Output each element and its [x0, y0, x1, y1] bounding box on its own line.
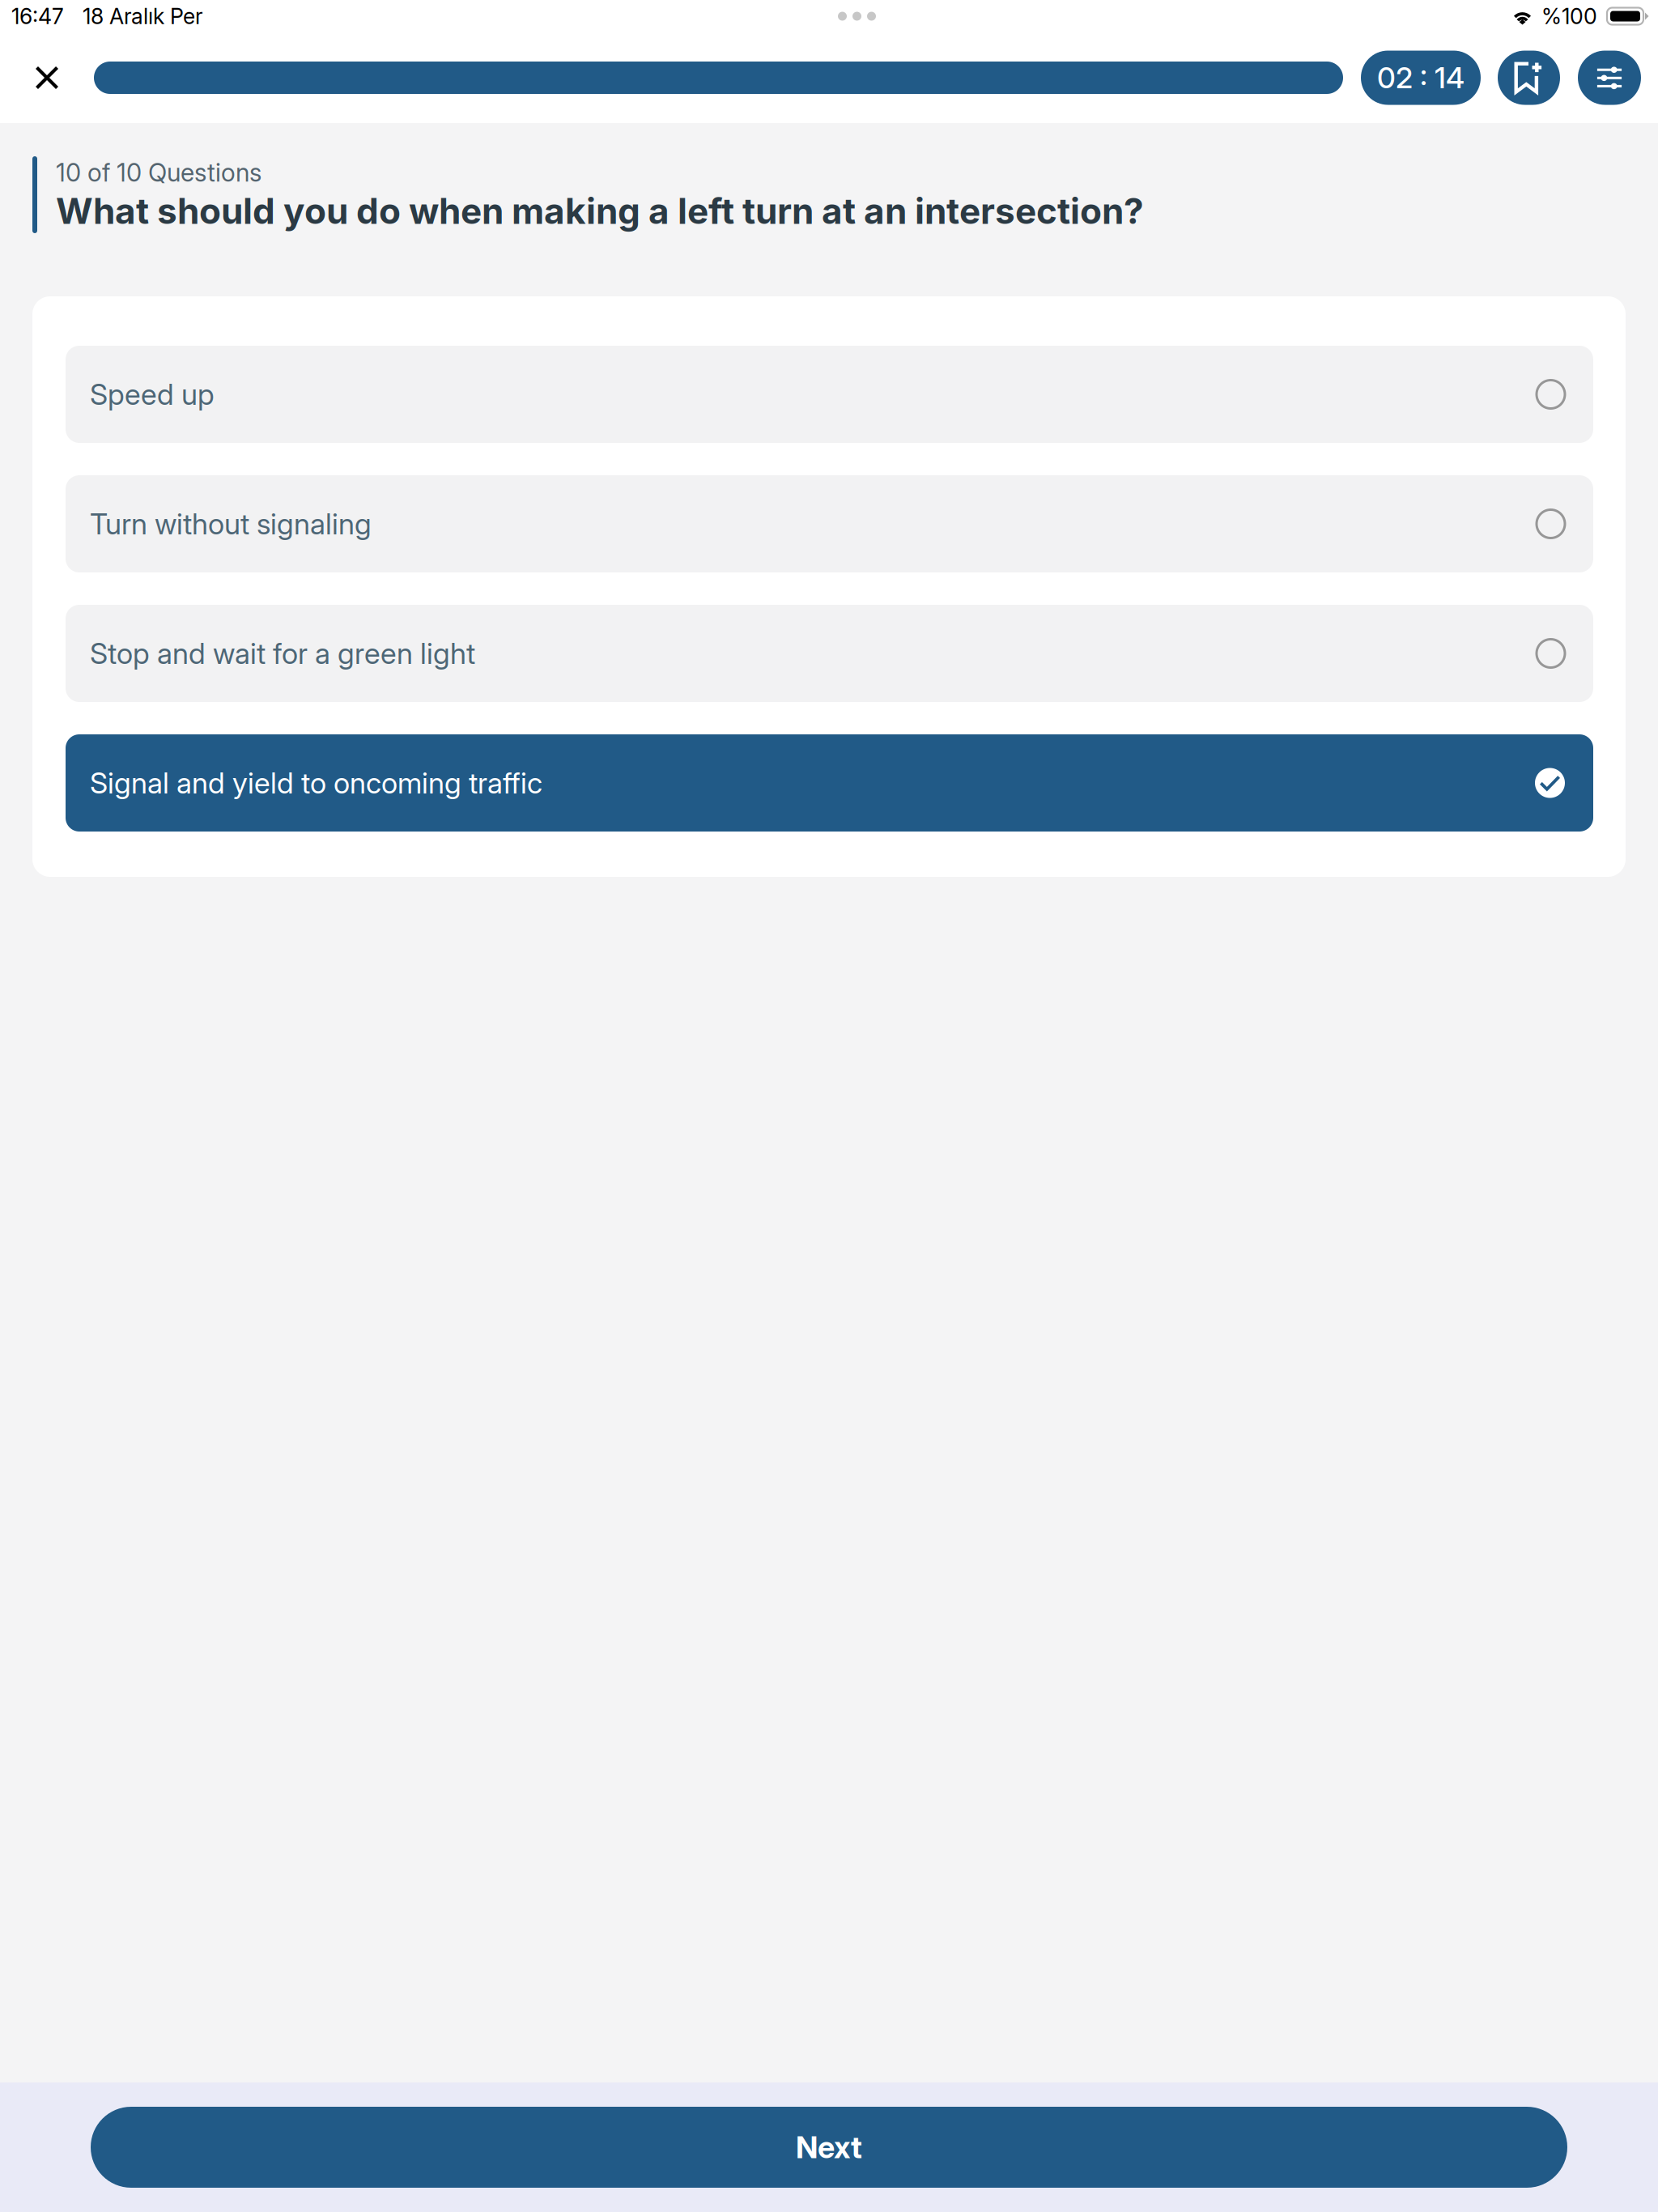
- staticText: 02 : 14: [1377, 60, 1465, 95]
- staticText: %100: [1541, 3, 1597, 29]
- button[interactable]: Settings: [1578, 51, 1641, 105]
- staticText: What should you do when making a left tu…: [56, 189, 1144, 232]
- button[interactable]: Signal and yield to oncoming traffic: [66, 734, 1593, 832]
- button[interactable]: Turn without signaling: [66, 475, 1593, 572]
- button[interactable]: Speed up: [66, 346, 1593, 443]
- button[interactable]: Stop and wait for a green light: [66, 605, 1593, 702]
- staticText: Speed up: [90, 377, 215, 412]
- button[interactable]: Add bookmark: [1498, 51, 1560, 105]
- staticText: Turn without signaling: [90, 506, 372, 541]
- button[interactable]: 02 : 14: [1361, 51, 1481, 105]
- button[interactable]: Close: [12, 32, 82, 123]
- staticText: Signal and yield to oncoming traffic: [90, 766, 542, 800]
- staticText: 16:47: [11, 3, 64, 29]
- staticText: Stop and wait for a green light: [90, 636, 475, 671]
- button[interactable]: Next: [91, 2107, 1567, 2188]
- staticText: Next: [796, 2129, 862, 2166]
- staticText: 10 of 10 Questions: [56, 157, 261, 187]
- staticText: 18 Aralık Per: [83, 3, 203, 29]
